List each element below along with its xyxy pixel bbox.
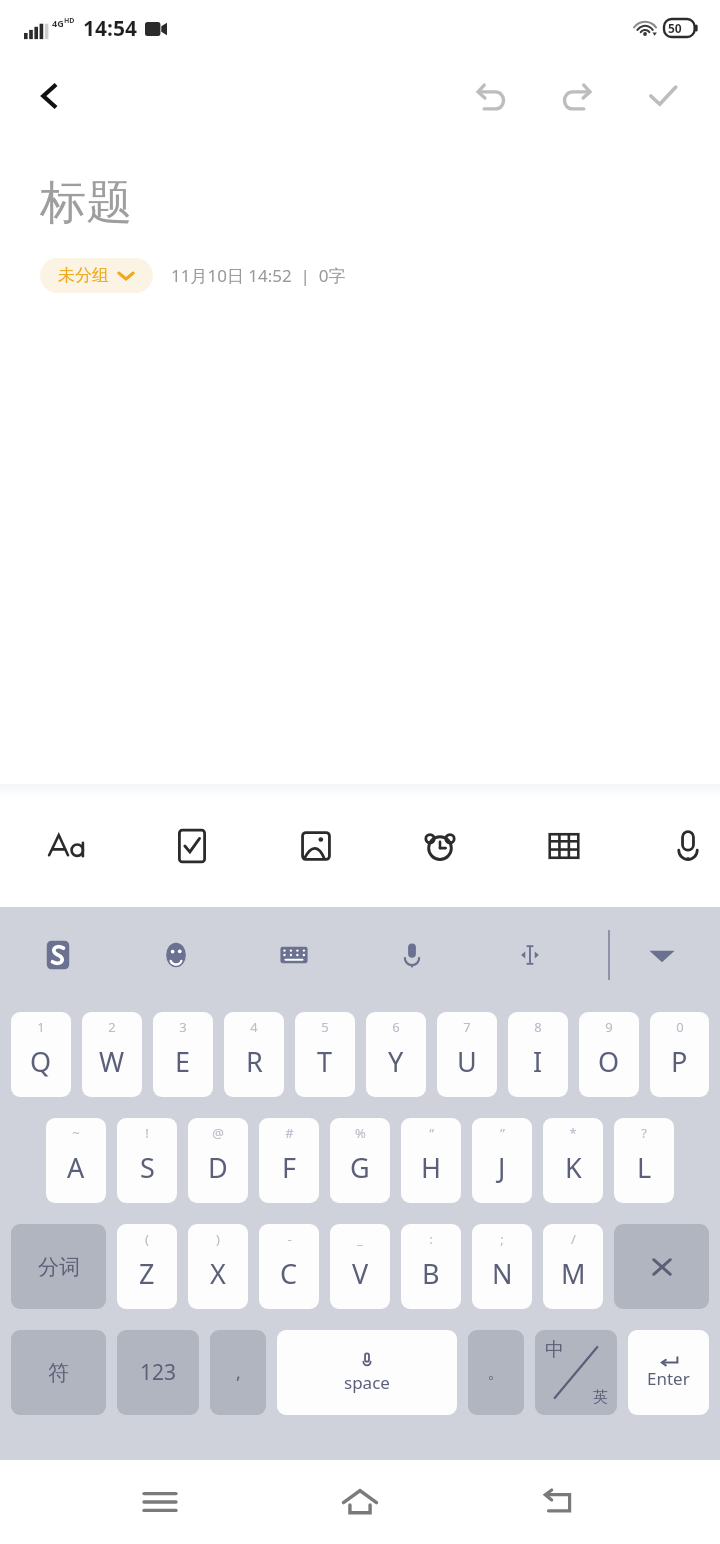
button[interactable]: Emoji [148,927,204,983]
button[interactable]: Back [22,68,78,124]
button[interactable]: : [401,1224,461,1309]
staticText: B [422,1255,440,1292]
staticText: 3 [179,1018,187,1036]
button[interactable]: 4 [224,1012,284,1097]
staticText: _ [357,1230,363,1248]
staticText: S [140,1149,155,1186]
staticText: 标题 [40,174,132,232]
button[interactable]: 。 [468,1330,524,1415]
button[interactable]: @ [188,1118,248,1203]
button[interactable]: # [259,1118,319,1203]
staticText: ) [216,1230,220,1248]
button[interactable]: Hide keyboard [634,927,690,983]
button[interactable]: Move cursor [502,927,558,983]
button[interactable]: Keyboard layout [266,927,322,983]
button[interactable]: 6 [366,1012,426,1097]
staticText: V [352,1255,369,1292]
button[interactable]: 1 [11,1012,71,1097]
staticText: @ [212,1124,224,1142]
button[interactable]: Recent apps [120,1462,200,1542]
staticText: 中 [545,1338,564,1362]
button[interactable]: 9 [579,1012,639,1097]
staticText: 。 [487,1361,505,1384]
button[interactable]: Enter [628,1330,709,1415]
staticText: F [282,1149,297,1186]
staticText: % [355,1124,366,1142]
staticText: * [569,1124,577,1142]
staticText: 2 [108,1018,116,1036]
button[interactable]: ; [472,1224,532,1309]
button[interactable]: ” [472,1118,532,1203]
button[interactable]: 0 [650,1012,709,1097]
button[interactable]: 符 [11,1330,106,1415]
staticText: , [236,1360,241,1385]
staticText: 123 [140,1358,177,1387]
button[interactable]: Checklist [164,818,220,874]
button[interactable]: Back [520,1462,600,1542]
staticText: E [175,1043,191,1080]
button[interactable]: 3 [153,1012,213,1097]
staticText: 5 [321,1018,329,1036]
button[interactable]: 8 [508,1012,568,1097]
button[interactable]: 分词 [11,1224,106,1309]
button[interactable]: - [259,1224,319,1309]
button[interactable]: Voice input [384,927,440,983]
staticText: Z [139,1255,155,1292]
button[interactable]: Table [536,818,592,874]
staticText: U [457,1043,477,1080]
button[interactable]: Done [632,65,694,127]
button[interactable]: ? [614,1118,674,1203]
staticText: HD [64,16,75,26]
button[interactable]: 123 [117,1330,199,1415]
staticText: G [350,1149,370,1186]
button[interactable]: 5 [295,1012,355,1097]
staticText: W [99,1043,125,1080]
staticText: 英 [593,1388,608,1407]
button[interactable]: Reminder [412,818,468,874]
button[interactable]: 7 [437,1012,497,1097]
button[interactable]: Voice [660,818,716,874]
staticText: H [421,1149,442,1186]
staticText: I [533,1043,543,1080]
button[interactable]: , [210,1330,266,1415]
button[interactable]: Chinese English toggle [535,1330,617,1415]
staticText: 7 [463,1018,471,1036]
button[interactable]: Home [320,1462,400,1542]
staticText: D [208,1149,228,1186]
staticText: / [571,1230,576,1248]
staticText: M [561,1255,586,1292]
staticText: T [317,1043,333,1080]
button[interactable]: Text style [40,818,96,874]
button[interactable]: Input method [30,927,86,983]
staticText: space [344,1371,390,1394]
button[interactable]: ) [188,1224,248,1309]
staticText: ? [641,1124,647,1142]
button[interactable]: space [277,1330,457,1415]
button[interactable]: ! [117,1118,177,1203]
button[interactable]: ~ [46,1118,106,1203]
staticText: Enter [647,1367,690,1390]
button[interactable]: 2 [82,1012,142,1097]
button[interactable]: ( [117,1224,177,1309]
staticText: J [498,1149,506,1186]
button[interactable]: “ [401,1118,461,1203]
button[interactable]: * [543,1118,603,1203]
staticText: 分词 [38,1254,80,1280]
staticText: A [67,1149,85,1186]
staticText: # [285,1124,294,1142]
button[interactable]: Undo [460,65,522,127]
button[interactable]: Insert image [288,818,344,874]
staticText: 6 [392,1018,400,1036]
staticText: 符 [48,1360,69,1386]
button[interactable]: Redo [546,65,608,127]
button[interactable]: 未分组 [40,258,153,293]
staticText: 50 [668,20,682,36]
staticText: 14:54 [83,14,137,43]
button[interactable]: Backspace [614,1224,709,1309]
staticText: - [287,1230,292,1248]
button[interactable]: _ [330,1224,390,1309]
button[interactable]: % [330,1118,390,1203]
staticText: K [565,1149,582,1186]
button[interactable]: / [543,1224,603,1309]
staticText: X [210,1255,226,1292]
